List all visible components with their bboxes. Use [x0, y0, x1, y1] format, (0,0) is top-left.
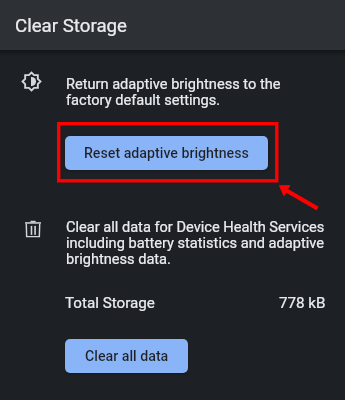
staticText: Clear all data for Device Health Service…	[66, 218, 326, 267]
other: Clear all data	[25, 220, 41, 237]
staticText: Clear Storage	[15, 15, 127, 37]
staticText: Return adaptive brightness to the factor…	[66, 75, 296, 108]
staticText: Reset adaptive brightness	[84, 145, 249, 162]
staticText: 778 kB	[279, 294, 326, 312]
staticText: Total Storage	[65, 294, 155, 312]
button[interactable]: Reset adaptive brightness	[65, 136, 268, 170]
button[interactable]: Clear Storage	[0, 0, 345, 50]
staticText: Clear all data	[85, 348, 169, 365]
button[interactable]: Clear all data	[65, 339, 188, 373]
other: Adaptive brightness	[22, 72, 41, 91]
